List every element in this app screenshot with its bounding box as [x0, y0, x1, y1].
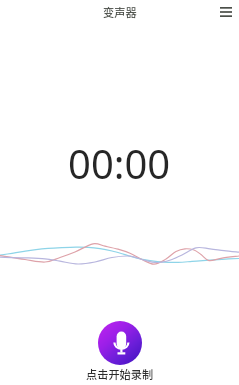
button[interactable]: Menu: [213, 0, 239, 24]
staticText: 变声器: [103, 4, 137, 20]
button[interactable]: Start recording: [98, 321, 142, 365]
staticText: 点击开始录制: [86, 366, 154, 382]
staticText: 00:00: [68, 136, 171, 190]
